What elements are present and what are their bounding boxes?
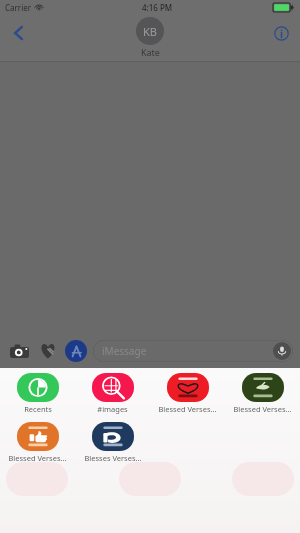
staticText: Blessed Verses... (158, 404, 217, 414)
staticText: Recents (24, 404, 52, 414)
button[interactable]: Camera (7, 339, 31, 363)
staticText: Blesses Verses... (84, 453, 142, 463)
button[interactable]: Recents (0, 371, 75, 416)
staticText: iMessage (102, 344, 147, 358)
staticText: Blessed Verses... (8, 453, 67, 463)
button[interactable]: Back (4, 18, 34, 48)
staticText: KB (143, 24, 157, 39)
button[interactable]: KB (136, 17, 164, 58)
button[interactable]: Blesses Verses... (75, 420, 150, 465)
button[interactable]: #images (75, 371, 150, 416)
staticText: #images (97, 404, 128, 414)
button[interactable]: Dictate (273, 342, 291, 360)
staticText: 4:16 PM (142, 2, 173, 13)
button[interactable]: Blessed Verses... (150, 371, 225, 416)
button[interactable]: Blessed Verses... (0, 420, 75, 465)
button[interactable]: Digital Touch (36, 339, 60, 363)
staticText: Carrier (5, 2, 32, 13)
button[interactable]: Details (266, 18, 296, 48)
staticText: Blessed Verses... (233, 404, 292, 414)
button[interactable]: App Store (65, 340, 87, 362)
staticText: Kate (141, 46, 160, 58)
button[interactable]: iMessage (93, 340, 293, 362)
button[interactable]: Blessed Verses... (225, 371, 300, 416)
